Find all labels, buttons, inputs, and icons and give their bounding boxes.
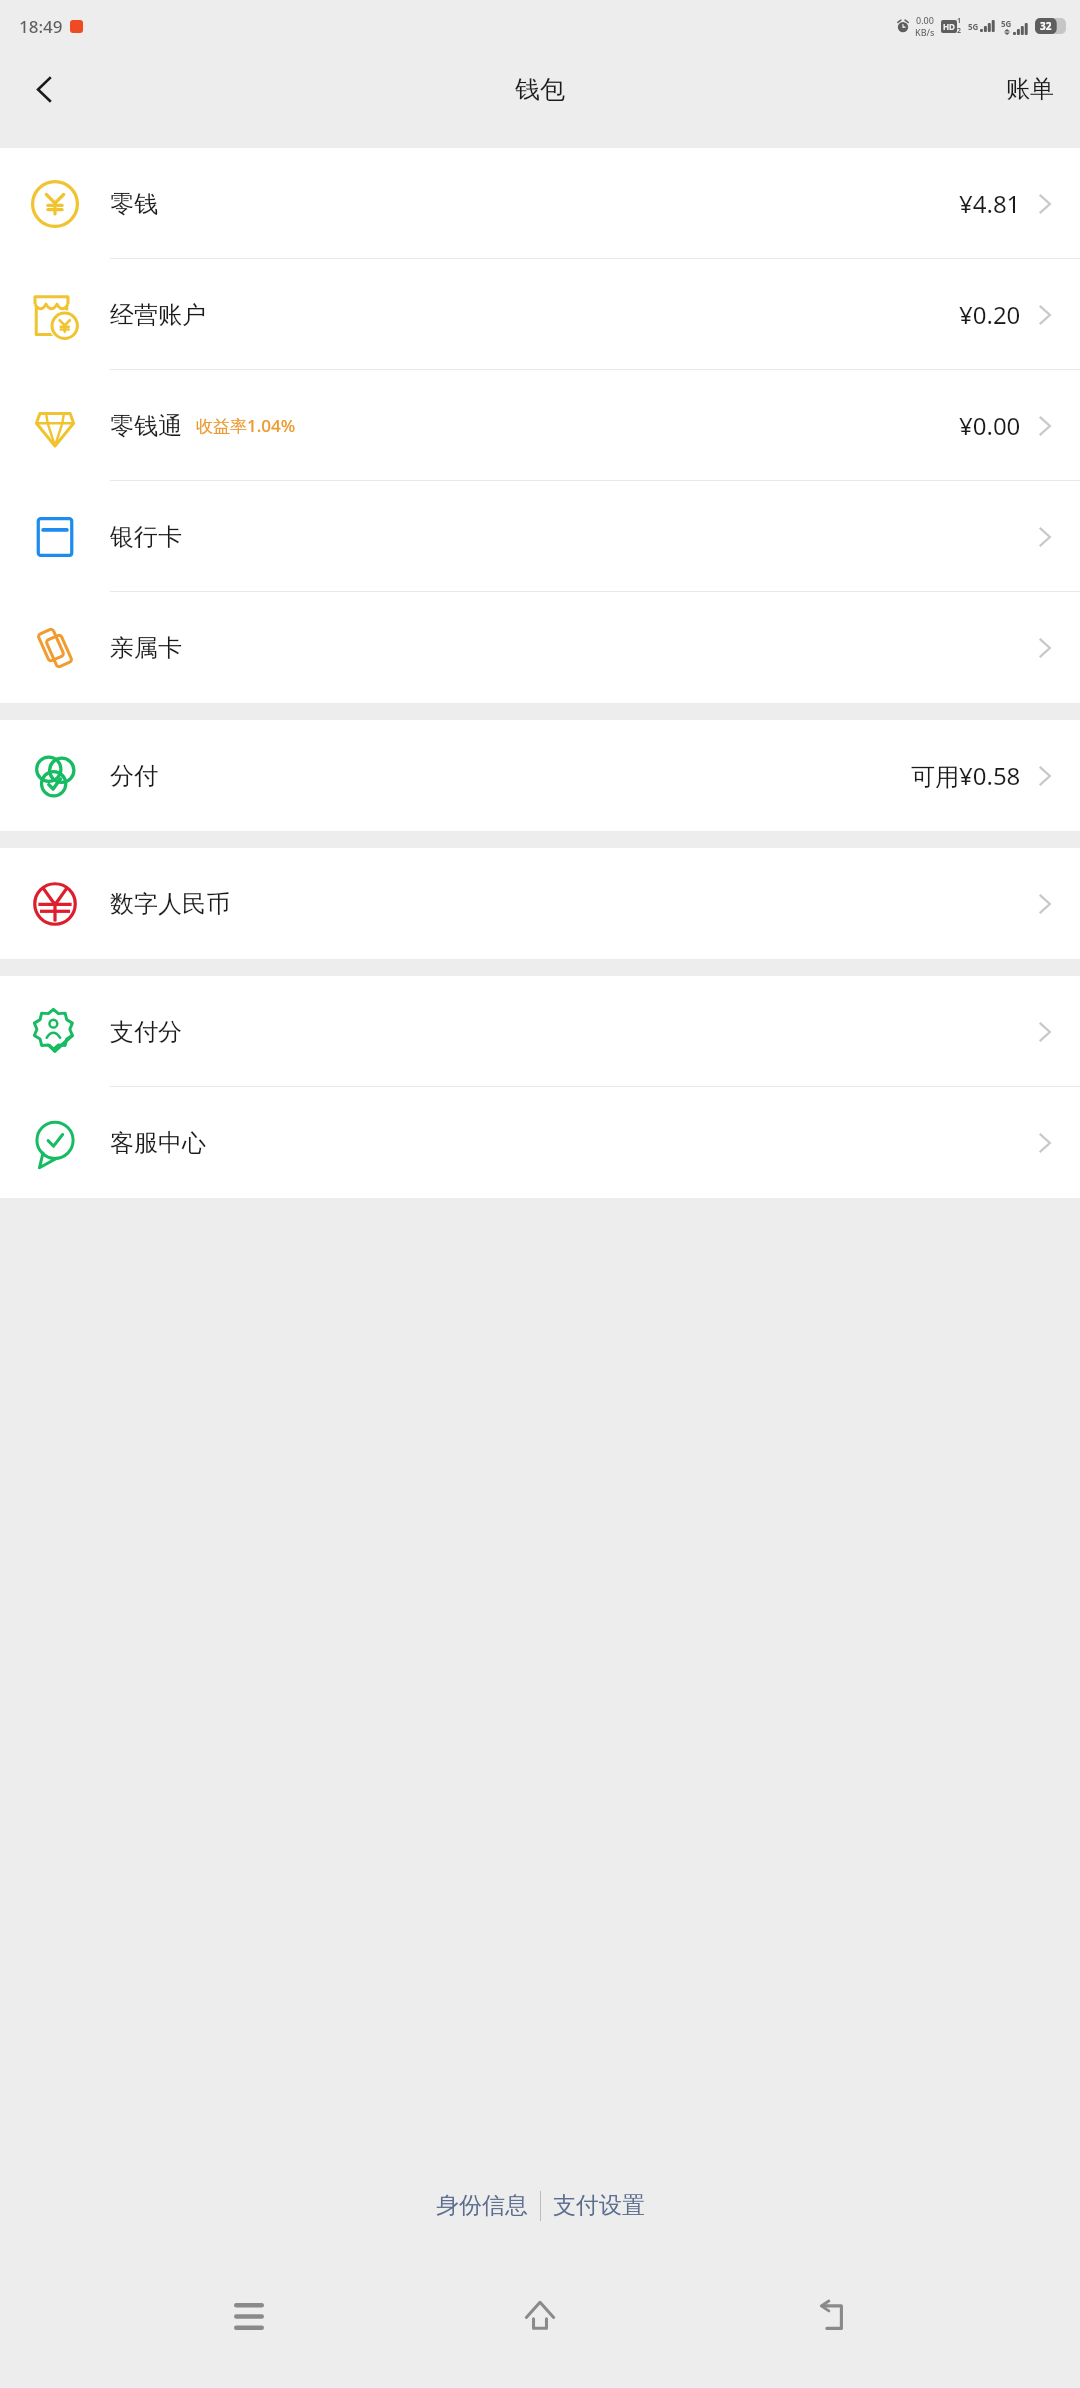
button[interactable]: 零钱 xyxy=(0,148,1080,259)
button[interactable]: Home xyxy=(498,2280,582,2352)
staticText: 32 xyxy=(1040,19,1052,33)
button[interactable]: 客服中心 xyxy=(0,1087,1080,1198)
staticText: ¥0.20 xyxy=(959,298,1021,331)
staticText: ¥4.81 xyxy=(959,187,1021,220)
staticText: 2 xyxy=(957,26,962,36)
button[interactable]: 经营账户 xyxy=(0,259,1080,370)
button[interactable]: 银行卡 xyxy=(0,481,1080,592)
button[interactable]: Back xyxy=(789,2280,873,2352)
staticText: 支付设置 xyxy=(553,2191,645,2220)
button[interactable]: Back xyxy=(0,52,88,126)
staticText: 身份信息 xyxy=(436,2191,528,2220)
button[interactable]: 零钱通 xyxy=(0,370,1080,481)
staticText: 5G xyxy=(1001,18,1012,29)
staticText: 数字人民币 xyxy=(110,889,230,919)
staticText: 可用¥0.58 xyxy=(911,759,1021,792)
staticText: 账单 xyxy=(1006,74,1054,104)
button[interactable]: 支付设置 xyxy=(541,2181,657,2230)
staticText: 零钱通 xyxy=(110,411,182,441)
staticText: 分付 xyxy=(110,761,158,791)
staticText: 18:49 xyxy=(19,15,63,38)
button[interactable]: 账单 xyxy=(980,52,1080,126)
staticText: 钱包 xyxy=(515,74,565,105)
staticText: 亲属卡 xyxy=(110,633,182,663)
staticText: KB/s xyxy=(915,26,935,38)
staticText: 零钱 xyxy=(110,189,158,219)
staticText: 收益率1.04% xyxy=(196,414,296,437)
button[interactable]: 数字人民币 xyxy=(0,848,1080,959)
staticText: 经营账户 xyxy=(110,300,206,330)
staticText: 银行卡 xyxy=(110,522,182,552)
button[interactable]: 支付分 xyxy=(0,976,1080,1087)
staticText: 客服中心 xyxy=(110,1128,206,1158)
staticText: 支付分 xyxy=(110,1017,182,1047)
staticText: ¥0.00 xyxy=(959,409,1021,442)
staticText: 1 xyxy=(957,16,962,26)
staticText: 5G xyxy=(968,21,979,32)
button[interactable]: 分付 xyxy=(0,720,1080,831)
button[interactable]: 亲属卡 xyxy=(0,592,1080,703)
staticText: 0.00 xyxy=(916,14,934,26)
button[interactable]: Recent apps xyxy=(207,2280,291,2352)
staticText: HD xyxy=(943,21,955,32)
button[interactable]: 身份信息 xyxy=(424,2181,540,2230)
